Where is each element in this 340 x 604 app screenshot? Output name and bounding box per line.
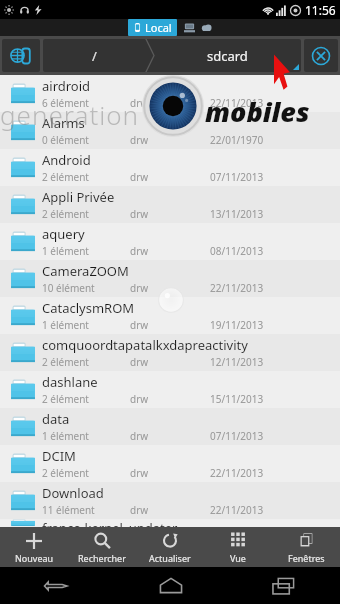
staticText: DCIM (42, 447, 76, 465)
staticText: 2 élément (42, 466, 89, 480)
staticText: 0 élément (42, 133, 89, 147)
button[interactable]: Alarms (0, 112, 340, 149)
staticText: drw (130, 503, 149, 517)
staticText: 1 élément (42, 429, 89, 443)
staticText: 11 élément (42, 503, 95, 517)
staticText: drw (130, 392, 149, 406)
staticText: 15/11/2013 (210, 392, 264, 406)
staticText: 6 élément (42, 96, 89, 110)
staticText: drw (130, 466, 149, 480)
button[interactable]: Appli Privée (0, 186, 340, 223)
staticText: 11:56 (305, 2, 336, 18)
staticText: Rechercher (78, 552, 126, 564)
button[interactable]: Recents (227, 567, 340, 604)
staticText: drw (130, 355, 149, 369)
staticText: Actualiser (149, 552, 191, 564)
staticText: 13/11/2013 (210, 207, 264, 221)
staticText: mobiles (205, 93, 310, 130)
button[interactable]: Close (304, 39, 338, 72)
button[interactable]: / (43, 39, 145, 72)
staticText: 2 élément (42, 392, 89, 406)
button[interactable]: Cloud (200, 21, 213, 34)
staticText: airdroid (42, 77, 91, 95)
staticText: Local (145, 20, 172, 35)
button[interactable]: Download (0, 482, 340, 519)
button[interactable]: Vue (204, 527, 272, 567)
staticText: 1 élément (42, 318, 89, 332)
button[interactable]: Actualiser (136, 527, 204, 567)
button[interactable]: Fenêtres (272, 527, 340, 567)
button[interactable]: data (0, 408, 340, 445)
staticText: CameraZOOM (42, 262, 129, 280)
staticText: drw (130, 429, 149, 443)
button[interactable]: Switch storage (2, 39, 40, 72)
staticText: drw (130, 170, 149, 184)
staticText: Fenêtres (288, 552, 325, 564)
staticText: dashlane (42, 373, 98, 391)
staticText: 22/11/2013 (210, 503, 264, 517)
staticText: 22/11/2013 (210, 281, 264, 295)
staticText: Android (42, 151, 91, 169)
button[interactable]: franco.kernel_updater (0, 519, 340, 527)
staticText: drw (130, 207, 149, 221)
staticText: Download (42, 484, 104, 502)
staticText: 2 élément (42, 170, 89, 184)
staticText: drw (130, 244, 149, 258)
staticText: 22/11/2013 (210, 466, 264, 480)
button[interactable]: airdroid (0, 75, 340, 112)
button[interactable]: Home (114, 567, 227, 604)
button[interactable]: Rechercher (68, 527, 136, 567)
staticText: sdcard (207, 47, 248, 65)
staticText: drw (130, 318, 149, 332)
staticText: aquery (42, 225, 85, 243)
staticText: drw (130, 133, 149, 147)
staticText: 1 élément (42, 244, 89, 258)
staticText: data (42, 410, 70, 428)
button[interactable]: DCIM (0, 445, 340, 482)
staticText: CataclysmROM (42, 299, 135, 317)
staticText: 2 élément (42, 207, 89, 221)
staticText: Alarms (42, 114, 85, 132)
staticText: 2 élément (42, 355, 89, 369)
button[interactable]: sdcard (154, 39, 301, 72)
button[interactable]: aquery (0, 223, 340, 260)
staticText: franco.kernel_updater (42, 519, 178, 527)
staticText: 10 élément (42, 281, 95, 295)
staticText: 12/11/2013 (210, 355, 264, 369)
button[interactable]: Back (0, 567, 114, 604)
staticText: 22/11/2013 (210, 96, 264, 110)
staticText: Nouveau (15, 552, 54, 564)
staticText: Appli Privée (42, 188, 115, 206)
button[interactable]: comquoordtapatalkxdapreactivity (0, 334, 340, 371)
staticText: 07/11/2013 (210, 170, 264, 184)
staticText: generation (0, 97, 140, 132)
staticText: drw (130, 96, 149, 110)
button[interactable]: Local (128, 19, 177, 36)
button[interactable]: Network (183, 21, 196, 34)
staticText: drw (130, 281, 149, 295)
button[interactable]: dashlane (0, 371, 340, 408)
staticText: comquoordtapatalkxdapreactivity (42, 336, 248, 354)
button[interactable]: CataclysmROM (0, 297, 340, 334)
button[interactable]: Android (0, 149, 340, 186)
button[interactable]: Nouveau (0, 527, 68, 567)
staticText: Vue (230, 552, 246, 564)
button[interactable]: CameraZOOM (0, 260, 340, 297)
staticText: 22/01/1970 (210, 133, 264, 147)
staticText: 19/11/2013 (210, 318, 264, 332)
staticText: 07/11/2013 (210, 429, 264, 443)
staticText: 08/11/2013 (210, 244, 264, 258)
staticText: / (92, 47, 97, 65)
